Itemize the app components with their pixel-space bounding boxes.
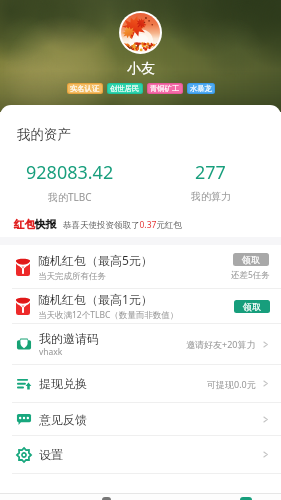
button[interactable]: 红包快报 xyxy=(0,212,281,237)
staticText: 邀请好友+20算力 xyxy=(186,338,256,350)
staticText: 277 xyxy=(195,160,226,185)
staticText: 我的TLBC xyxy=(48,190,92,204)
staticText: 小友 xyxy=(127,60,155,78)
button[interactable]: 随机红包（最高5元） xyxy=(0,245,281,288)
staticText: 当天完成所有任务 xyxy=(38,271,106,282)
staticText: 红包快报 xyxy=(14,218,56,231)
staticText: 提现兑换 xyxy=(39,376,207,391)
staticText: 水暴龙 xyxy=(190,84,212,93)
staticText: 青铜矿工 xyxy=(150,84,180,93)
button[interactable]: 我的 xyxy=(211,494,281,500)
staticText: 还差5任务 xyxy=(231,269,270,281)
button[interactable]: 意见反馈 xyxy=(0,403,281,435)
button[interactable]: 随机红包（最高1元） xyxy=(0,289,281,323)
staticText: 创世居民 xyxy=(110,84,140,93)
button[interactable]: 设置 xyxy=(0,436,281,473)
staticText: vhaxk xyxy=(39,346,63,358)
staticText: 领取 xyxy=(243,301,261,312)
staticText: 意见反馈 xyxy=(39,412,261,427)
staticText: 可提现0.0元 xyxy=(207,378,256,390)
staticText: 领取 xyxy=(242,254,260,265)
staticText: 随机红包（最高1元） xyxy=(38,291,153,307)
staticText: 恭喜天使投资领取了0.37元红包 xyxy=(63,219,182,231)
button[interactable]: 提现兑换 xyxy=(0,365,281,402)
staticText: 随机红包（最高5元） xyxy=(38,252,153,268)
button[interactable]: 我的邀请码 xyxy=(0,324,281,364)
staticText: 我的资产 xyxy=(17,126,71,143)
staticText: 928083.42 xyxy=(26,160,114,185)
staticText: 我的算力 xyxy=(191,190,231,203)
staticText: 设置 xyxy=(39,447,261,462)
staticText: 实名认证 xyxy=(70,84,100,93)
staticText: 我的邀请码 xyxy=(39,331,99,346)
staticText: 当天收满12个TLBC（数量而非数值） xyxy=(38,309,179,321)
button[interactable]: 矿场 xyxy=(71,494,141,500)
button[interactable]: 领取 xyxy=(234,300,270,313)
